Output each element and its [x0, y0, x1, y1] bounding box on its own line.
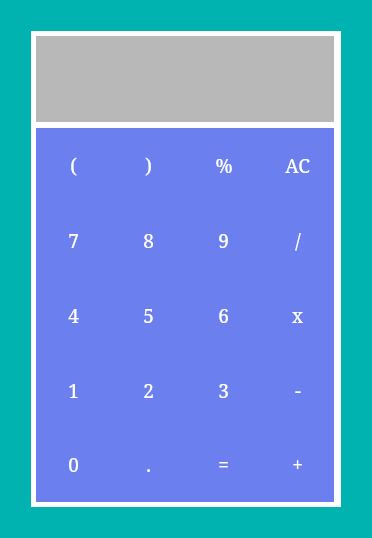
button[interactable]: x: [261, 278, 334, 353]
button[interactable]: +: [261, 428, 334, 502]
staticText: -: [295, 378, 301, 404]
button[interactable]: 2: [111, 353, 186, 428]
button[interactable]: (: [36, 128, 111, 203]
button[interactable]: 8: [111, 203, 186, 278]
button[interactable]: 5: [111, 278, 186, 353]
staticText: x: [292, 303, 303, 329]
button[interactable]: 6: [186, 278, 261, 353]
button[interactable]: %: [186, 128, 261, 203]
staticText: 0: [68, 452, 79, 478]
staticText: 9: [218, 228, 229, 254]
staticText: %: [215, 153, 233, 179]
staticText: /: [295, 228, 301, 254]
button[interactable]: /: [261, 203, 334, 278]
staticText: =: [218, 452, 229, 478]
button[interactable]: -: [261, 353, 334, 428]
staticText: AC: [285, 153, 310, 179]
button[interactable]: ): [111, 128, 186, 203]
button[interactable]: 0: [36, 428, 111, 502]
staticText: 5: [143, 303, 154, 329]
staticText: ): [145, 153, 152, 179]
button[interactable]: .: [111, 428, 186, 502]
staticText: 7: [68, 228, 79, 254]
button[interactable]: AC: [261, 128, 334, 203]
button[interactable]: 1: [36, 353, 111, 428]
button[interactable]: 7: [36, 203, 111, 278]
staticText: 8: [143, 228, 154, 254]
button[interactable]: 3: [186, 353, 261, 428]
button[interactable]: 4: [36, 278, 111, 353]
staticText: 3: [218, 378, 229, 404]
staticText: +: [292, 452, 303, 478]
button[interactable]: =: [186, 428, 261, 502]
staticText: (: [70, 153, 77, 179]
staticText: 1: [68, 378, 79, 404]
staticText: 2: [143, 378, 154, 404]
staticText: .: [146, 452, 151, 478]
staticText: 4: [68, 303, 79, 329]
staticText: 6: [218, 303, 229, 329]
button[interactable]: 9: [186, 203, 261, 278]
